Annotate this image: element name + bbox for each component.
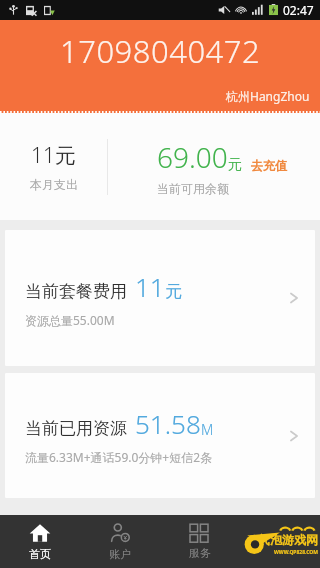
button[interactable]: 首页 — [0, 515, 80, 568]
button[interactable]: 去充值 — [251, 158, 287, 173]
staticText: 元 — [165, 281, 182, 302]
staticText: 服务 — [189, 546, 211, 560]
staticText: 去充值 — [251, 158, 287, 173]
staticText: 账户 — [109, 547, 131, 561]
button[interactable]: 服务 — [160, 515, 240, 568]
staticText: 17098040472 — [60, 30, 261, 72]
staticText: 首页 — [29, 547, 51, 561]
staticText: 杭州HangZhou — [226, 88, 310, 104]
staticText: 02:47 — [283, 2, 314, 18]
staticText: 当前套餐费用 — [25, 281, 127, 302]
staticText: WWW.QP828.COM — [274, 549, 318, 556]
staticText: M — [201, 420, 214, 439]
staticText: 当前已用资源 — [25, 418, 127, 439]
staticText: 气泡游戏网 — [258, 532, 318, 547]
staticText: 资源总量55.00M — [25, 312, 115, 328]
staticText: 元 — [228, 156, 242, 174]
button[interactable]: 账户 — [80, 515, 160, 568]
staticText: 流量6.33M+通话59.0分钟+短信2条 — [25, 449, 213, 465]
staticText: 11 — [135, 269, 165, 304]
button[interactable]: 69.00 — [108, 138, 320, 196]
button[interactable]: 气泡游戏网 — [240, 515, 320, 568]
button[interactable]: 当前已用资源 — [5, 373, 315, 498]
staticText: 当前可用余额 — [157, 181, 229, 196]
staticText: 51.58 — [135, 406, 201, 441]
button[interactable]: 11元 — [0, 141, 107, 192]
staticText: 本月支出 — [30, 177, 78, 192]
button[interactable]: 当前套餐费用 — [5, 230, 315, 366]
staticText: 69.00 — [157, 138, 228, 176]
staticText: 11元 — [31, 141, 76, 170]
